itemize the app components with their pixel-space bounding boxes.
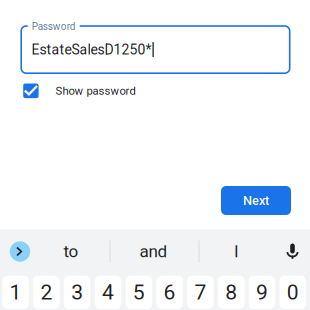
button[interactable]: 1 bbox=[2, 276, 29, 309]
button[interactable]: 2 bbox=[33, 276, 60, 309]
staticText: to bbox=[63, 241, 78, 261]
staticText: 5 bbox=[133, 280, 145, 305]
staticText: 6 bbox=[164, 280, 176, 305]
button[interactable]: 3 bbox=[64, 276, 90, 309]
staticText: 7 bbox=[194, 280, 206, 305]
staticText: 8 bbox=[225, 280, 237, 305]
staticText: 3 bbox=[71, 280, 83, 305]
button[interactable]: to bbox=[46, 229, 96, 273]
staticText: I bbox=[234, 241, 239, 261]
staticText: and bbox=[139, 241, 167, 261]
button[interactable]: 7 bbox=[187, 276, 214, 309]
button[interactable]: and bbox=[122, 229, 184, 273]
staticText: Password bbox=[32, 21, 76, 32]
button[interactable]: 5 bbox=[126, 276, 152, 309]
staticText: 0 bbox=[287, 280, 299, 305]
staticText: Next bbox=[243, 193, 269, 208]
button[interactable]: 0 bbox=[280, 276, 306, 309]
button[interactable]: 9 bbox=[249, 276, 275, 309]
staticText: 9 bbox=[256, 280, 268, 305]
button[interactable]: 8 bbox=[218, 276, 244, 309]
button[interactable]: 6 bbox=[156, 276, 183, 309]
button[interactable]: 4 bbox=[95, 276, 121, 309]
button[interactable]: Show password bbox=[23, 78, 243, 104]
staticText: 2 bbox=[40, 280, 52, 305]
staticText: Show password bbox=[55, 84, 135, 97]
staticText: 1 bbox=[10, 280, 22, 305]
button[interactable]: I bbox=[211, 229, 261, 273]
button[interactable]: Voice input bbox=[277, 229, 307, 273]
staticText: 4 bbox=[102, 280, 114, 305]
button[interactable]: Next bbox=[221, 186, 291, 215]
staticText: EstateSalesD1250* bbox=[32, 41, 152, 58]
button[interactable]: Next suggestion bbox=[0, 229, 40, 273]
